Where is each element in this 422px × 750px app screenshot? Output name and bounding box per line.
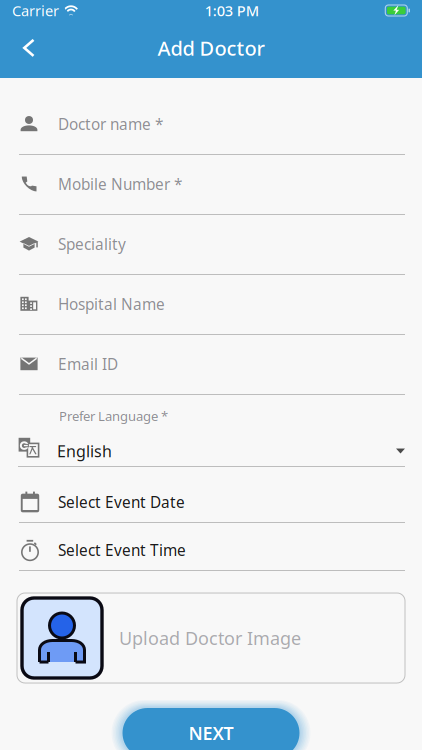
staticText: 1:03 PM xyxy=(205,0,259,20)
staticText: Select Event Time xyxy=(58,540,186,560)
staticText: Carrier xyxy=(12,0,59,20)
staticText: Doctor name * xyxy=(58,114,163,134)
button[interactable]: Prefer Language * xyxy=(0,409,422,467)
button[interactable]: Doctor name * xyxy=(0,114,422,155)
staticText: Upload Doctor Image xyxy=(119,626,301,650)
button[interactable]: Email ID xyxy=(0,354,422,395)
staticText: Prefer Language * xyxy=(59,407,168,425)
staticText: Email ID xyxy=(58,354,118,374)
staticText: English xyxy=(57,440,112,462)
button[interactable]: Mobile Number * xyxy=(0,174,422,215)
staticText: Mobile Number * xyxy=(58,174,182,194)
staticText: Select Event Date xyxy=(58,492,185,512)
button[interactable]: Back xyxy=(7,26,51,70)
button[interactable]: Hospital Name xyxy=(0,294,422,335)
staticText: Hospital Name xyxy=(58,294,165,314)
staticText: Add Doctor xyxy=(157,34,264,62)
button[interactable]: Speciality xyxy=(0,234,422,275)
button[interactable]: Select Event Date xyxy=(0,491,422,523)
button[interactable]: Select Event Time xyxy=(0,539,422,571)
button[interactable]: NEXT xyxy=(111,700,310,750)
staticText: Speciality xyxy=(58,234,126,254)
button[interactable]: Upload Doctor Image xyxy=(0,593,422,683)
staticText: NEXT xyxy=(188,721,233,745)
